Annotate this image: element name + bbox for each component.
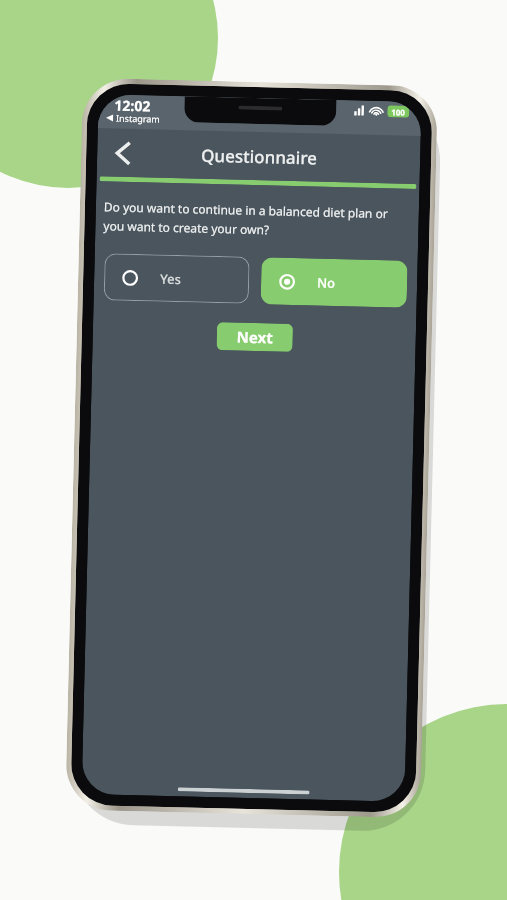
staticText: Yes	[160, 270, 181, 288]
button[interactable]: No	[261, 257, 408, 308]
staticText: Do you want to continue in a balanced di…	[103, 198, 411, 241]
staticText: 100	[391, 106, 405, 118]
staticText: 12:02	[114, 95, 151, 115]
staticText: Questionnaire	[201, 144, 317, 169]
staticText: Next	[236, 327, 274, 347]
staticText: Instagram	[116, 112, 160, 125]
staticText: No	[317, 273, 336, 292]
button[interactable]: Next	[216, 322, 293, 352]
button[interactable]: Back	[103, 133, 142, 172]
button[interactable]: Yes	[104, 253, 250, 304]
